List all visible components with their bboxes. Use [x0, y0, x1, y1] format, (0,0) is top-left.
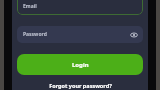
staticText: Password: [23, 31, 47, 38]
staticText: Login: [72, 61, 89, 69]
button[interactable]: Forgot your password?: [12, 82, 148, 89]
staticText: Email: [23, 3, 37, 10]
staticText: Forgot your password?: [49, 82, 112, 89]
button[interactable]: Password: [17, 26, 143, 43]
button[interactable]: Show password: [129, 30, 139, 40]
button[interactable]: Email: [17, 0, 143, 15]
button[interactable]: Login: [17, 54, 143, 75]
